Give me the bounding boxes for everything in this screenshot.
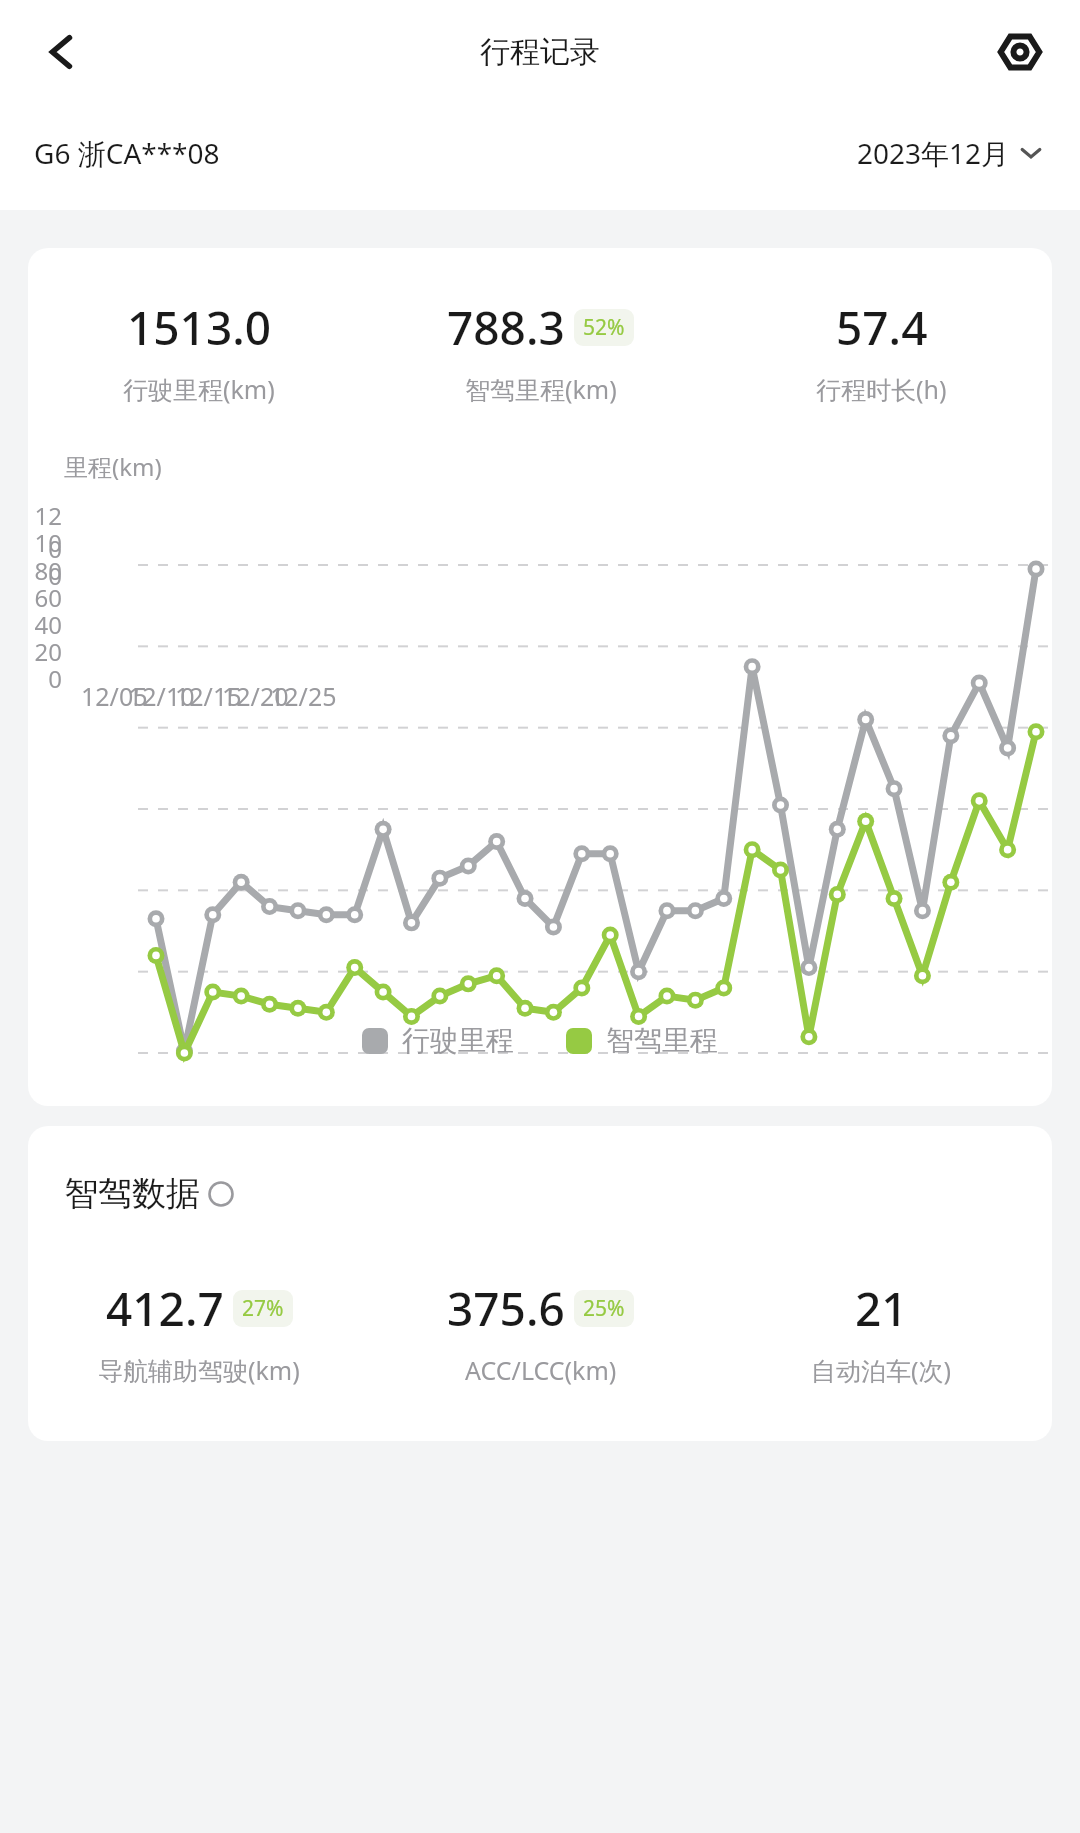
staticText: 375.6	[447, 1277, 565, 1340]
staticText: 智驾里程	[606, 1023, 718, 1058]
button[interactable]: 智驾数据	[64, 1172, 234, 1215]
staticText: 12/15	[175, 679, 242, 713]
staticText: 行驶里程(km)	[123, 372, 275, 406]
staticText: 导航辅助驾驶(km)	[98, 1353, 300, 1387]
button[interactable]: 2023年12月	[853, 130, 1046, 176]
staticText: 60	[34, 581, 62, 614]
staticText: 788.3	[447, 296, 565, 359]
staticText: 智驾数据	[64, 1172, 200, 1215]
staticText: 12/25	[270, 679, 337, 713]
staticText: 行程时长(h)	[816, 372, 947, 406]
staticText: 里程(km)	[64, 450, 162, 483]
staticText: 自动泊车(次)	[811, 1353, 952, 1387]
staticText: 27%	[242, 1294, 284, 1323]
staticText: 40	[34, 608, 62, 641]
staticText: 智驾里程(km)	[465, 372, 617, 406]
staticText: 100	[28, 526, 62, 592]
staticText: 12/10	[128, 679, 195, 713]
staticText: 12/05	[81, 679, 148, 713]
staticText: ACC/LCC(km)	[465, 1353, 617, 1387]
staticText: 1513.0	[127, 296, 272, 359]
staticText: 57.4	[836, 296, 928, 359]
staticText: 21	[855, 1277, 908, 1340]
staticText: 行驶里程	[402, 1023, 514, 1058]
button[interactable]: Back	[34, 24, 90, 80]
staticText: 20	[34, 635, 62, 668]
staticText: 412.7	[106, 1277, 224, 1340]
button[interactable]: Settings	[990, 22, 1050, 82]
staticText: 12/20	[222, 679, 289, 713]
staticText: 2023年12月	[857, 134, 1010, 172]
staticText: G6 浙CA***08	[34, 134, 220, 172]
staticText: 0	[48, 662, 62, 695]
staticText: 80	[34, 554, 62, 587]
staticText: 52%	[583, 313, 625, 342]
staticText: 25%	[583, 1294, 625, 1323]
staticText: 120	[28, 499, 62, 565]
staticText: 行程记录	[480, 33, 600, 71]
